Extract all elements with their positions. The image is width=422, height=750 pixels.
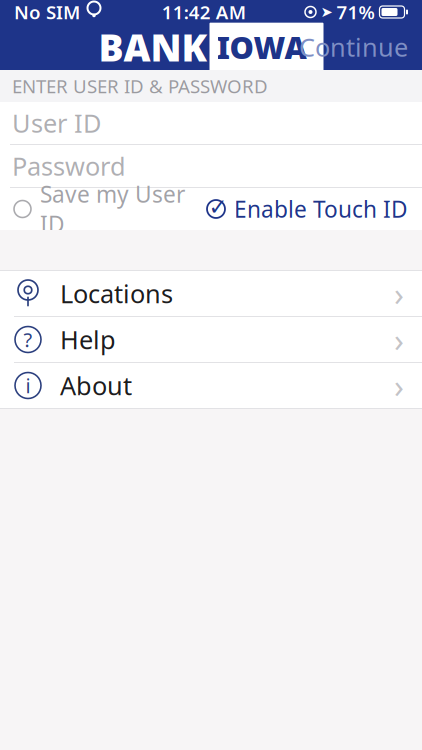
button[interactable]: Save my User ID [0, 170, 185, 248]
staticText: › [394, 272, 404, 315]
staticText: ENTER USER ID & PASSWORD [12, 74, 268, 98]
staticText: User ID [12, 106, 101, 140]
staticText: IOWA [216, 27, 306, 67]
button[interactable]: Locations [0, 271, 422, 316]
staticText: Help [60, 323, 116, 356]
staticText: Locations [60, 277, 173, 310]
staticText: ? [23, 326, 32, 353]
staticText: Password [12, 149, 126, 183]
staticText: › [394, 318, 404, 361]
button[interactable]: ? [0, 317, 422, 362]
staticText: No SIM [14, 0, 80, 24]
staticText: Save my User ID [40, 179, 185, 239]
staticText: i [25, 372, 30, 399]
button[interactable]: Continue [285, 22, 422, 72]
staticText: BANK [98, 22, 207, 72]
staticText: Continue [299, 30, 408, 64]
staticText: About [60, 369, 132, 402]
staticText: Enable Touch ID [234, 194, 408, 224]
staticText: ✓ [208, 194, 227, 220]
staticText: 71% [336, 0, 374, 24]
button[interactable]: i [0, 363, 422, 408]
staticText: 11:42 AM [162, 0, 246, 24]
button[interactable]: ✓ [205, 185, 422, 233]
staticText: › [394, 364, 404, 407]
staticText: ➤ [320, 4, 332, 20]
